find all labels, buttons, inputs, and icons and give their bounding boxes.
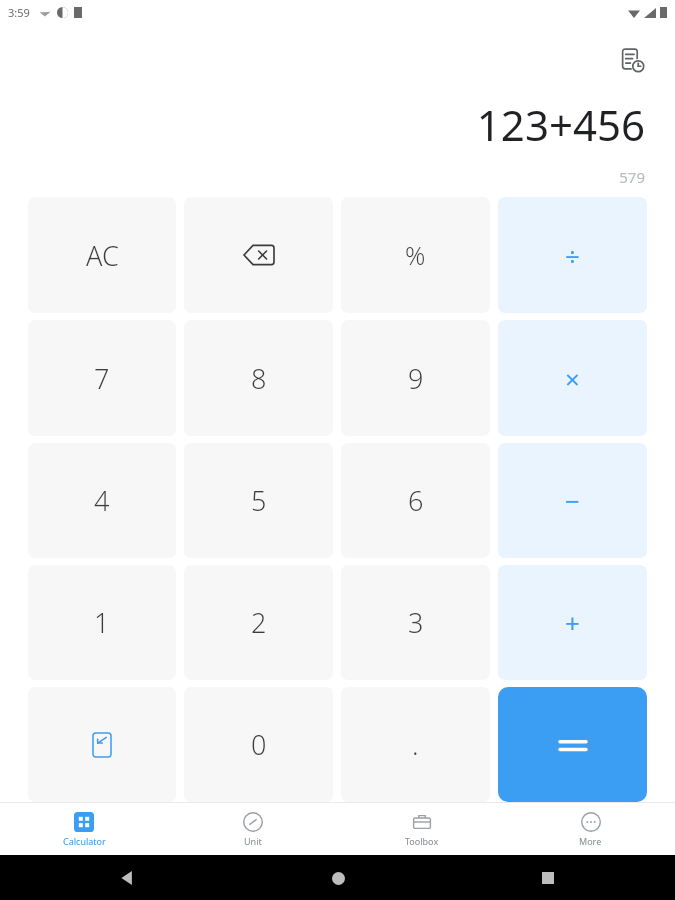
button[interactable]: Recents — [531, 861, 565, 895]
button[interactable]: 2 — [184, 565, 333, 680]
button[interactable]: 8 — [184, 320, 333, 436]
button[interactable]: Equals — [498, 687, 647, 802]
staticText: More — [579, 835, 602, 847]
button[interactable]: Toolbox — [337, 803, 506, 855]
staticText: 5 — [251, 482, 267, 519]
button[interactable]: 6 — [341, 443, 490, 558]
staticText: 8 — [251, 360, 267, 397]
staticText: 1 — [94, 604, 110, 641]
button[interactable]: 5 — [184, 443, 333, 558]
button[interactable]: 0 — [184, 687, 333, 802]
staticText: 4 — [94, 482, 110, 519]
staticText: 123+456 — [476, 96, 645, 153]
button[interactable]: Back — [110, 861, 144, 895]
staticText: 7 — [94, 360, 110, 397]
button[interactable]: ÷ — [498, 197, 647, 313]
staticText: AC — [86, 237, 119, 274]
button[interactable]: % — [341, 197, 490, 313]
button[interactable]: Unit — [168, 803, 337, 855]
staticText: 579 — [619, 167, 645, 187]
button[interactable]: AC — [28, 197, 176, 313]
staticText: . — [412, 726, 419, 763]
button[interactable]: 9 — [341, 320, 490, 436]
staticText: 6 — [408, 482, 424, 519]
button[interactable]: + — [498, 565, 647, 680]
button[interactable]: Home — [321, 861, 355, 895]
button[interactable]: 7 — [28, 320, 176, 436]
staticText: 0 — [251, 726, 267, 763]
button[interactable]: Backspace — [184, 197, 333, 313]
staticText: Calculator — [63, 835, 106, 847]
staticText: 3:59 — [8, 5, 30, 20]
button[interactable]: History — [611, 39, 653, 81]
button[interactable]: − — [498, 443, 647, 558]
staticText: × — [565, 361, 580, 396]
staticText: + — [565, 605, 580, 640]
staticText: 3 — [408, 604, 424, 641]
button[interactable]: More — [506, 803, 675, 855]
staticText: % — [405, 238, 426, 272]
staticText: Unit — [244, 835, 262, 847]
button[interactable]: × — [498, 320, 647, 436]
button[interactable]: 4 — [28, 443, 176, 558]
button[interactable]: 3 — [341, 565, 490, 680]
staticText: − — [565, 483, 580, 518]
staticText: 2 — [251, 604, 267, 641]
button[interactable]: 1 — [28, 565, 176, 680]
staticText: Toolbox — [405, 835, 439, 847]
button[interactable]: Expand — [28, 687, 176, 802]
staticText: ÷ — [565, 238, 580, 273]
button[interactable]: Calculator — [0, 803, 168, 855]
staticText: 9 — [408, 360, 424, 397]
